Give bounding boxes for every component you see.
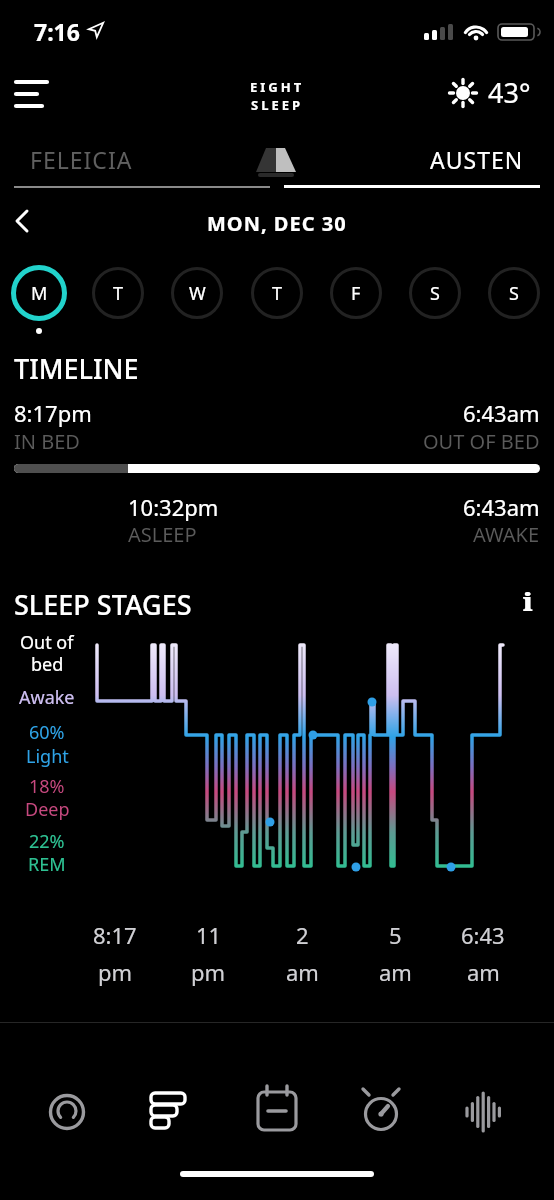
button[interactable]: T [250, 266, 304, 320]
button[interactable]: S [408, 266, 462, 320]
staticText: REM [28, 852, 66, 877]
staticText: EIGHT [250, 78, 305, 96]
staticText: 6:43am [463, 398, 540, 428]
button[interactable]: AUSTEN [284, 138, 554, 190]
staticText: Out of [20, 630, 74, 655]
staticText: SLEEP [251, 96, 304, 114]
staticText: 5 [389, 920, 402, 950]
staticText: Awake [19, 685, 75, 710]
staticText: Deep [25, 797, 70, 822]
staticText: M [31, 281, 48, 306]
button[interactable]: 43° [448, 74, 531, 111]
staticText: OUT OF BED [423, 428, 540, 455]
button[interactable]: T [91, 266, 145, 320]
staticText: 8:17pm [14, 398, 92, 428]
button[interactable] [4, 204, 48, 244]
staticText: MON, DEC 30 [207, 210, 347, 237]
staticText: W [189, 281, 206, 306]
staticText: AWAKE [473, 521, 540, 548]
staticText: ASLEEP [128, 521, 197, 548]
staticText: FELEICIA [30, 144, 133, 175]
staticText: S [509, 281, 519, 306]
staticText: 7:16 [34, 16, 80, 47]
staticText: 8:17 [93, 920, 137, 950]
button[interactable]: S [487, 266, 541, 320]
staticText: 2 [296, 920, 309, 950]
staticText: T [272, 281, 283, 306]
staticText: 22% [29, 829, 65, 854]
button[interactable]: W [170, 266, 224, 320]
button[interactable] [349, 1080, 413, 1144]
staticText: 6:43am [463, 492, 540, 522]
staticText: am [286, 957, 319, 987]
button[interactable]: M [12, 266, 66, 320]
staticText: IN BED [14, 428, 80, 455]
button[interactable]: F [329, 266, 383, 320]
button[interactable] [451, 1080, 515, 1144]
staticText: SLEEP STAGES [14, 586, 192, 623]
staticText: pm [191, 957, 226, 987]
staticText: bed [31, 652, 64, 677]
staticText: 10:32pm [128, 492, 219, 522]
staticText: TIMELINE [14, 350, 139, 387]
button[interactable] [136, 1080, 200, 1144]
staticText: AUSTEN [430, 144, 524, 175]
staticText: T [113, 281, 124, 306]
staticText: Light [26, 744, 69, 769]
staticText: am [467, 957, 500, 987]
button[interactable]: i [508, 580, 548, 620]
button[interactable] [245, 1080, 309, 1144]
staticText: am [379, 957, 412, 987]
staticText: 11 [196, 920, 222, 950]
staticText: 18% [29, 774, 65, 799]
staticText: 43° [488, 74, 531, 111]
button[interactable] [35, 1080, 99, 1144]
staticText: 60% [29, 720, 65, 745]
button[interactable]: FELEICIA [0, 138, 270, 190]
staticText: S [430, 281, 440, 306]
staticText: 6:43 [461, 920, 505, 950]
staticText: F [351, 281, 361, 306]
button[interactable] [6, 70, 58, 118]
staticText: pm [98, 957, 133, 987]
staticText: i [523, 583, 533, 618]
